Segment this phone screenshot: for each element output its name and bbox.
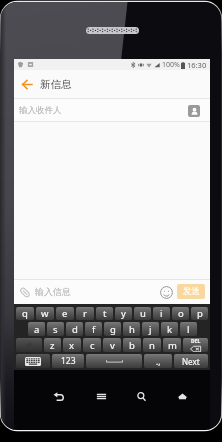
button[interactable]: Recent apps (96, 391, 107, 402)
button[interactable]: d (66, 322, 83, 336)
button[interactable]: Next (174, 354, 208, 368)
button[interactable]: Attach file (18, 285, 32, 299)
staticText: p (197, 307, 203, 320)
staticText: 100% (162, 60, 180, 70)
staticText: u (140, 307, 146, 320)
staticText: DEL (191, 338, 201, 345)
staticText: h (129, 323, 135, 336)
button[interactable]: Back (14, 70, 39, 99)
button[interactable]: q (16, 307, 34, 320)
staticText: 123 (61, 355, 76, 367)
button[interactable]: z (44, 338, 61, 352)
button[interactable]: Search (136, 391, 147, 402)
staticText: Next (182, 356, 200, 367)
button[interactable]: t (96, 307, 113, 320)
button[interactable]: s (47, 322, 64, 336)
button[interactable]: g (104, 322, 121, 336)
staticText: l (187, 323, 190, 336)
button[interactable]: p (191, 307, 208, 320)
staticText: e (62, 307, 68, 320)
button[interactable]: Emoji (159, 285, 173, 299)
staticText: z (50, 339, 55, 352)
button[interactable]: h (123, 322, 140, 336)
staticText: s (53, 323, 58, 336)
staticText: k (167, 323, 173, 336)
button[interactable]: u (134, 307, 151, 320)
staticText: b (129, 339, 135, 352)
button[interactable]: v (103, 338, 121, 352)
button[interactable]: j (142, 322, 159, 336)
button[interactable]: 123 (52, 354, 84, 368)
staticText: r (83, 307, 87, 320)
button[interactable] (16, 338, 42, 352)
staticText: y (121, 307, 126, 320)
staticText: 输入收件人 (19, 105, 62, 116)
staticText: w (41, 307, 49, 320)
button[interactable]: Home (177, 391, 188, 402)
button[interactable]: x (63, 338, 81, 352)
staticText: q (22, 307, 28, 320)
staticText: i (160, 307, 163, 320)
button[interactable]: r (76, 307, 94, 320)
staticText: 发送 (183, 286, 200, 297)
staticText: ., (156, 356, 161, 367)
staticText: n (149, 339, 155, 352)
button[interactable]: o (172, 307, 189, 320)
button[interactable]: l (180, 322, 197, 336)
button[interactable] (86, 354, 142, 368)
staticText: 新信息 (40, 78, 72, 91)
button[interactable]: y (115, 307, 132, 320)
button[interactable]: i (153, 307, 170, 320)
button[interactable]: n (143, 338, 161, 352)
staticText: j (149, 323, 152, 336)
staticText: f (92, 323, 96, 336)
button[interactable]: ., (144, 354, 172, 368)
staticText: v (110, 339, 115, 352)
button[interactable]: f (85, 322, 102, 336)
staticText: o (178, 307, 184, 320)
staticText: d (72, 323, 78, 336)
staticText: t (103, 307, 107, 320)
staticText: c (90, 339, 95, 352)
button[interactable]: m (163, 338, 181, 352)
staticText: 输入信息 (35, 286, 71, 297)
button[interactable]: c (83, 338, 101, 352)
staticText: 16:30 (187, 60, 207, 70)
staticText: g (110, 323, 116, 336)
button[interactable]: Back (53, 391, 64, 402)
button[interactable]: a (28, 322, 45, 336)
button[interactable]: DEL (183, 338, 208, 352)
button[interactable]: w (36, 307, 54, 320)
button[interactable]: 发送 (177, 284, 205, 299)
button[interactable]: Pick contact (188, 105, 200, 117)
button[interactable]: b (123, 338, 141, 352)
staticText: m (168, 339, 177, 352)
button[interactable]: k (161, 322, 178, 336)
button[interactable]: e (56, 307, 74, 320)
staticText: a (34, 323, 40, 336)
staticText: x (69, 339, 75, 352)
button[interactable] (16, 354, 50, 368)
